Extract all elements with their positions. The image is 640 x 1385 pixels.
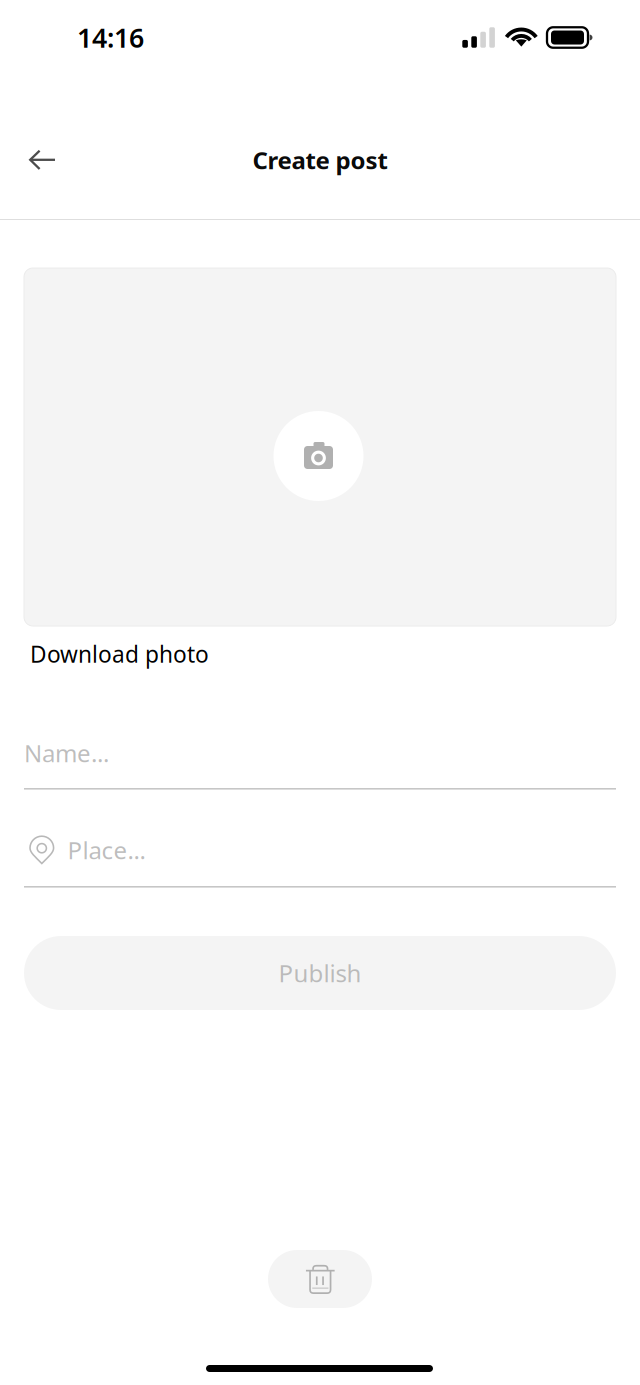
staticText: Name... xyxy=(24,737,109,769)
button[interactable]: Delete xyxy=(268,1250,372,1308)
button[interactable]: Name xyxy=(24,726,616,790)
staticText: Download photo xyxy=(30,639,209,669)
button[interactable]: Place xyxy=(24,824,616,886)
staticText: Publish xyxy=(278,957,361,989)
button[interactable]: Back xyxy=(13,132,71,188)
button[interactable]: Publish xyxy=(24,936,616,1010)
button[interactable]: Download photo xyxy=(24,268,616,626)
staticText: Place... xyxy=(67,834,145,866)
staticText: 14:16 xyxy=(77,20,144,55)
staticText: Create post xyxy=(252,144,387,176)
